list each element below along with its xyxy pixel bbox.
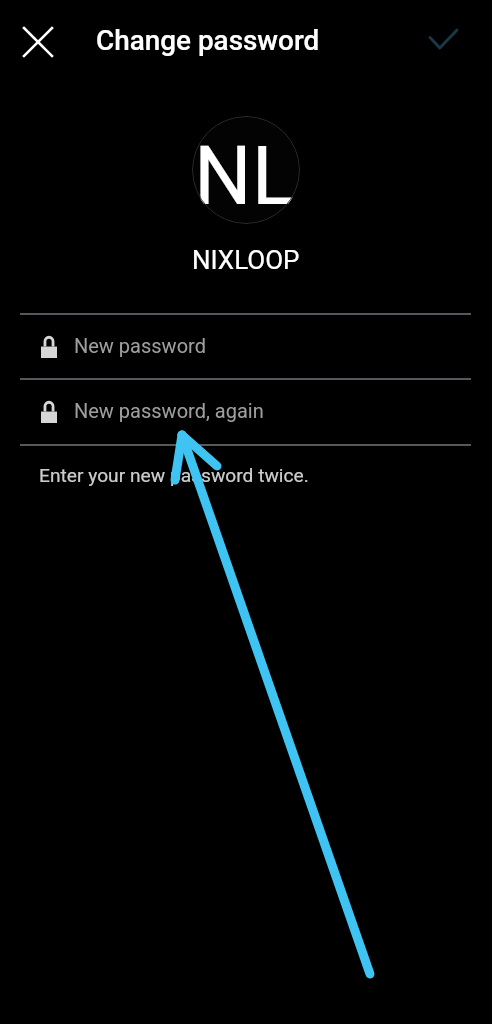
button[interactable]: Close: [14, 18, 62, 66]
staticText: NIXLOOP: [192, 245, 300, 275]
button[interactable]: Account avatar: [192, 116, 300, 224]
staticText: NL: [194, 129, 296, 224]
staticText: Change password: [96, 24, 320, 57]
button[interactable]: New password: [0, 313, 492, 378]
button[interactable]: New password, again: [0, 378, 492, 443]
staticText: Enter your new password twice.: [39, 464, 309, 487]
staticText: New password, again: [74, 399, 264, 422]
button[interactable]: Save password: [419, 15, 467, 63]
staticText: New password: [74, 334, 206, 357]
